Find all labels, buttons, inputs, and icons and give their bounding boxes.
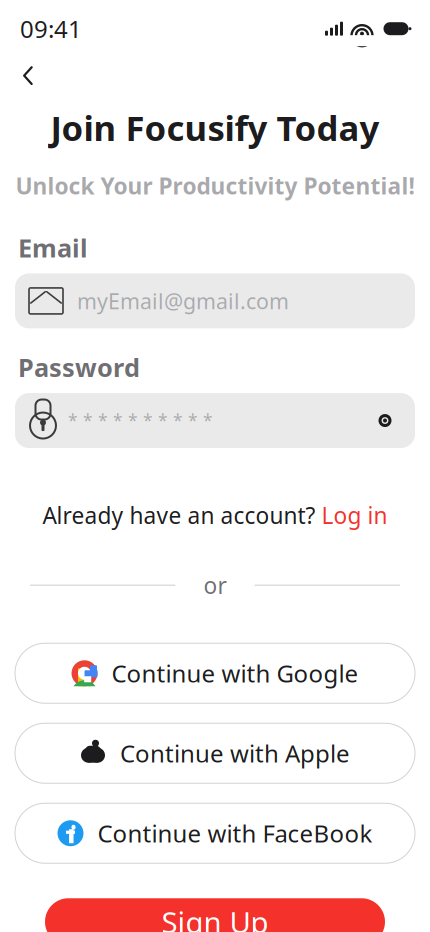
button[interactable]: Continue with Google — [15, 643, 415, 703]
button[interactable]: Continue with FaceBook — [15, 803, 415, 863]
staticText: Continue with Apple — [120, 737, 350, 769]
button[interactable]: Back — [6, 59, 50, 93]
staticText: or — [203, 570, 226, 600]
button[interactable]: Sign Up — [45, 898, 385, 932]
staticText: Join Focusify Today — [50, 105, 379, 151]
button[interactable]: Continue with Apple — [15, 723, 415, 783]
button[interactable]: Show password — [368, 403, 402, 437]
staticText: Password — [18, 350, 140, 384]
staticText: Continue with FaceBook — [97, 817, 372, 849]
staticText: * * * * * * * * * * — [68, 409, 213, 432]
staticText: 09:41 — [20, 13, 82, 45]
staticText: Continue with Google — [111, 657, 358, 689]
staticText: myEmail@gmail.com — [77, 287, 289, 315]
staticText: Log in — [321, 500, 387, 530]
button[interactable]: Log in — [321, 500, 387, 530]
staticText: Sign Up — [161, 902, 268, 932]
staticText: Email — [18, 231, 88, 264]
staticText: Already have an account? — [42, 500, 315, 530]
staticText: Unlock Your Productivity Potential! — [15, 171, 414, 201]
